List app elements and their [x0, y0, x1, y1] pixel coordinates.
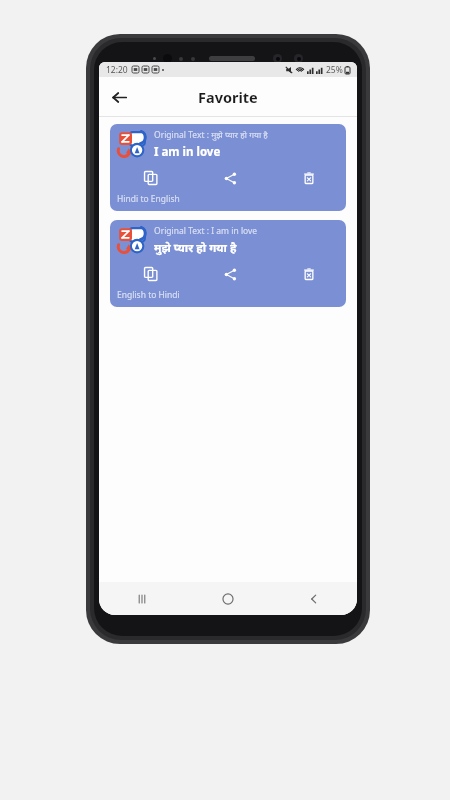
staticText: English to Hindi — [117, 289, 180, 301]
staticText: Original Text : I am in love — [154, 225, 258, 237]
button[interactable]: Back — [271, 582, 357, 615]
button[interactable]: Original Text : I am in love — [110, 220, 346, 307]
button[interactable]: Back — [104, 82, 134, 112]
button[interactable]: Copy — [140, 167, 162, 189]
button[interactable]: Copy — [140, 263, 162, 285]
staticText: I am in love — [154, 144, 221, 160]
staticText: 25% — [326, 64, 343, 76]
button[interactable]: Recents — [99, 582, 185, 615]
staticText: Favorite — [198, 87, 258, 107]
button[interactable]: Share — [219, 167, 241, 189]
button[interactable]: Share — [219, 263, 241, 285]
button[interactable]: Original Text : मुझे प्यार हो गया है — [110, 124, 346, 211]
staticText: मुझे प्यार हो गया है — [154, 240, 237, 256]
button[interactable]: Home — [185, 582, 271, 615]
staticText: Hindi to English — [117, 193, 180, 205]
staticText: 12:20 — [106, 64, 128, 76]
staticText: Original Text : मुझे प्यार हो गया है — [154, 129, 268, 141]
button[interactable]: Delete — [298, 263, 320, 285]
button[interactable]: Delete — [298, 167, 320, 189]
